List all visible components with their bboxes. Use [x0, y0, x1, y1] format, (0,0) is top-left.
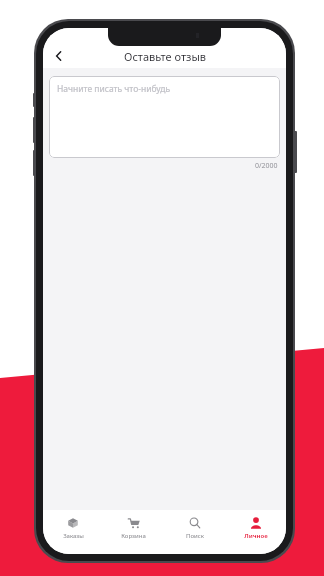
button[interactable]: Back [47, 44, 71, 68]
staticText: Начните писать что-нибудь [57, 83, 171, 95]
button[interactable]: Поиск [164, 510, 225, 554]
button[interactable]: Корзина [103, 510, 164, 554]
button[interactable]: Личное [225, 510, 286, 554]
staticText: Поиск [186, 532, 204, 540]
staticText: 0/2000 [255, 161, 278, 171]
button[interactable]: Заказы [43, 510, 103, 554]
staticText: Личное [244, 532, 268, 540]
staticText: Корзина [121, 532, 146, 540]
staticText: Заказы [63, 532, 84, 540]
staticText: Оставьте отзыв [124, 49, 206, 64]
button[interactable]: Начните писать что-нибудь [49, 76, 280, 158]
